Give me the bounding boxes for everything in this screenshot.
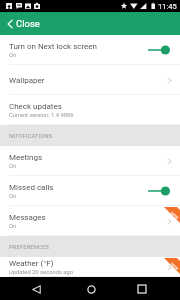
staticText: On bbox=[9, 52, 17, 59]
staticText: On bbox=[9, 163, 17, 170]
button[interactable]: Back bbox=[26, 279, 46, 299]
staticText: Messages bbox=[9, 213, 46, 222]
button[interactable]: Recents bbox=[132, 279, 152, 299]
staticText: On bbox=[9, 223, 17, 230]
staticText: Wallpaper bbox=[9, 76, 45, 85]
staticText: Close bbox=[16, 18, 40, 29]
button[interactable]: Turn on Next lock screen bbox=[0, 35, 180, 65]
button[interactable]: Weather (°F) bbox=[0, 257, 180, 277]
staticText: Current version: 1.4 9886 bbox=[9, 112, 74, 119]
staticText: Check updates bbox=[9, 102, 62, 111]
button[interactable]: Messages bbox=[0, 206, 180, 236]
staticText: NEW bbox=[170, 211, 179, 220]
staticText: Weather (°F) bbox=[9, 259, 54, 268]
staticText: On bbox=[9, 193, 17, 200]
staticText: NOTIFICATIONS bbox=[9, 132, 53, 139]
staticText: Meetings bbox=[9, 153, 43, 162]
button[interactable]: Wallpaper bbox=[0, 65, 180, 95]
staticText: 11:45 bbox=[158, 2, 177, 11]
staticText: NEW bbox=[170, 262, 179, 271]
button[interactable]: Meetings bbox=[0, 146, 180, 176]
button[interactable]: Home bbox=[81, 279, 101, 299]
staticText: Missed calls bbox=[9, 183, 54, 192]
button[interactable]: Missed calls bbox=[0, 176, 180, 206]
button[interactable]: Check updates bbox=[0, 95, 180, 125]
staticText: Updated 20 seconds ago bbox=[9, 269, 74, 276]
staticText: PREFERENCES bbox=[9, 243, 49, 250]
staticText: Turn on Next lock screen bbox=[9, 42, 97, 51]
